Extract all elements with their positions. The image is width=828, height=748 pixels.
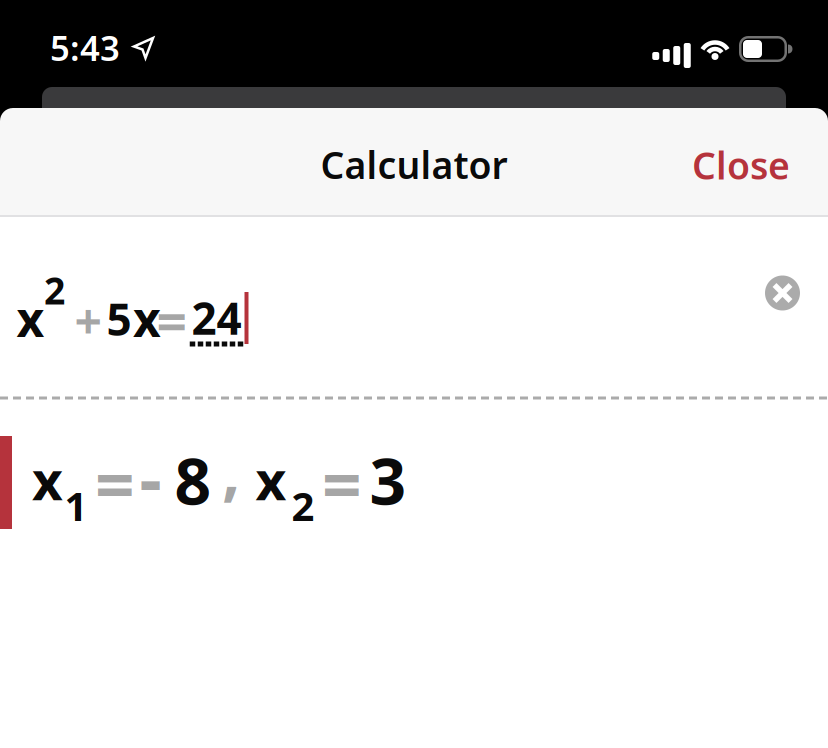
staticText: 5:43	[50, 24, 120, 70]
staticText: ,	[222, 427, 240, 512]
staticText: x	[16, 287, 44, 350]
staticText: =	[156, 285, 187, 356]
staticText: 5	[106, 290, 131, 348]
staticText: 2	[291, 479, 314, 532]
staticText: 3	[369, 437, 406, 522]
staticText: =	[95, 437, 135, 529]
staticText: 24	[191, 289, 241, 347]
staticText: 2	[44, 265, 65, 315]
staticText: 8	[174, 437, 211, 522]
staticText: +	[74, 288, 101, 352]
button[interactable]: Close	[692, 140, 790, 190]
staticText: 1	[64, 479, 87, 532]
staticText: Calculator	[320, 140, 507, 189]
staticText: -	[139, 431, 161, 523]
staticText: x	[133, 287, 161, 350]
staticText: x	[255, 444, 286, 515]
staticText: x	[32, 444, 63, 515]
staticText: =	[322, 437, 362, 529]
staticText: Close	[692, 140, 790, 190]
button[interactable]	[765, 275, 800, 310]
